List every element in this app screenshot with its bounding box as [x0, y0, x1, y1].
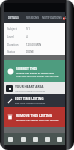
button[interactable]: REMOVE THIS LISTING — [4, 107, 65, 127]
button[interactable]: NOTIFICATIONS — [42, 12, 65, 23]
staticText: 120.00 MIN — [26, 43, 42, 47]
staticText: DONE — [26, 50, 34, 54]
staticText: Status — [7, 50, 16, 54]
staticText: Level — [7, 35, 14, 39]
staticText: EDIT TIME LISTING — [15, 97, 44, 101]
button[interactable]: Add — [29, 133, 41, 145]
staticText: YOUR HEART AREA — [15, 85, 44, 89]
button[interactable]: SESSIONS — [23, 12, 42, 23]
button[interactable]: SUBMIT THIS — [4, 60, 65, 82]
staticText: Add your detail in records — [15, 89, 46, 92]
button[interactable]: DETAILS — [4, 12, 23, 23]
staticText: Remove this listing from the records — [16, 118, 59, 121]
staticText: DETAILS — [8, 16, 19, 20]
staticText: 4 — [26, 35, 28, 39]
button[interactable]: YOUR HEART AREA — [4, 82, 65, 94]
staticText: 9.1 — [26, 27, 30, 31]
button[interactable]: Profile — [53, 133, 65, 145]
staticText: Only you and the admin can see this — [16, 74, 59, 77]
button[interactable]: Home — [4, 133, 17, 145]
staticText: edit your made in records — [15, 101, 46, 104]
staticText: SUBMIT THIS — [16, 66, 38, 70]
staticText: NOTIFICATIONS — [42, 16, 62, 20]
staticText: Subject — [7, 27, 17, 31]
button[interactable]: Chat — [41, 133, 53, 145]
button[interactable]: EDIT TIME LISTING — [4, 94, 65, 107]
staticText: SESSIONS — [26, 16, 40, 20]
staticText: Submit this listing to review now — [16, 71, 54, 74]
staticText: REMOVE THIS LISTING — [16, 113, 53, 117]
staticText: 3 — [63, 17, 65, 20]
button[interactable]: Search — [17, 133, 29, 145]
staticText: Duration — [7, 43, 19, 47]
